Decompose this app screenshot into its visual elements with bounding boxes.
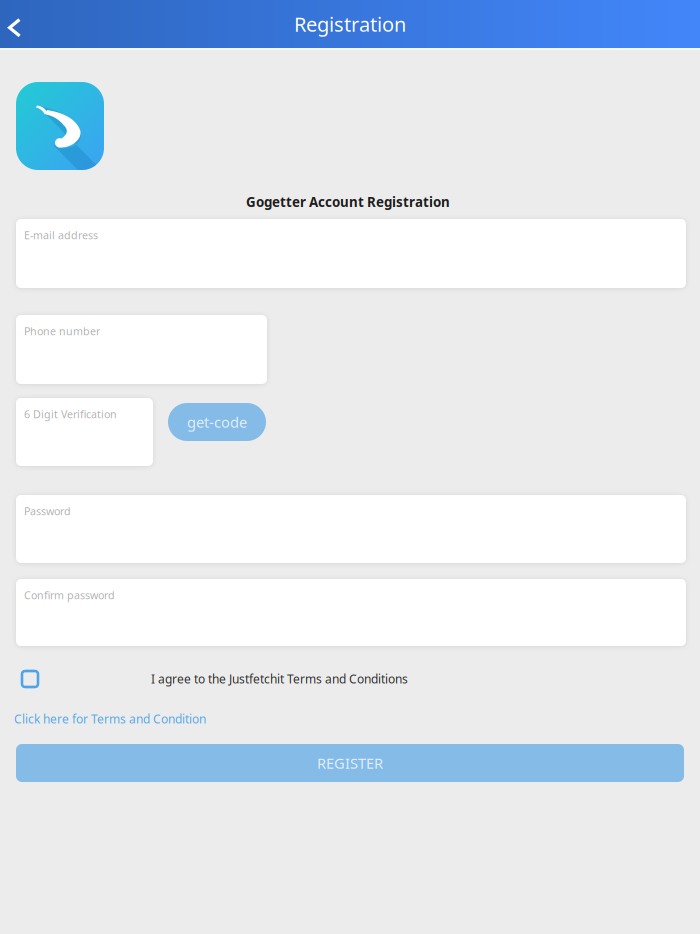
button[interactable]: I agree to the Justfetchit Terms and Con… — [15, 663, 45, 693]
staticText: Password — [24, 504, 71, 518]
button[interactable]: Click here for Terms and Condition — [14, 711, 206, 727]
staticText: REGISTER — [317, 753, 383, 773]
staticText: E-mail address — [24, 228, 98, 242]
staticText: Phone number — [24, 324, 100, 338]
staticText: Confirm password — [24, 588, 115, 602]
staticText: Registration — [294, 11, 406, 37]
staticText: I agree to the Justfetchit Terms and Con… — [151, 671, 408, 687]
staticText: Gogetter Account Registration — [246, 193, 450, 211]
button[interactable]: Back — [0, 0, 40, 48]
staticText: 6 Digit Verification — [24, 407, 117, 421]
staticText: Click here for Terms and Condition — [14, 711, 206, 727]
staticText: get-code — [187, 412, 247, 432]
button[interactable]: REGISTER — [16, 744, 684, 782]
button[interactable]: get-code — [168, 403, 266, 441]
